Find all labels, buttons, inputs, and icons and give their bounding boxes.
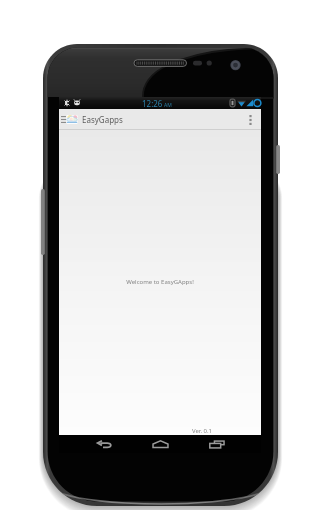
staticText: Ver. 0.1 — [192, 427, 213, 435]
button[interactable]: Recent apps — [200, 435, 234, 453]
button[interactable]: More options — [244, 109, 257, 130]
staticText: Welcome to EasyGApps! — [126, 278, 194, 286]
button[interactable]: Home — [143, 435, 177, 453]
button[interactable]: Back — [87, 435, 121, 453]
button[interactable]: Open navigation drawer — [60, 109, 66, 130]
staticText: EasyGapps — [82, 114, 123, 125]
staticText: AM — [164, 102, 172, 109]
staticText: 12:26 — [142, 98, 163, 109]
